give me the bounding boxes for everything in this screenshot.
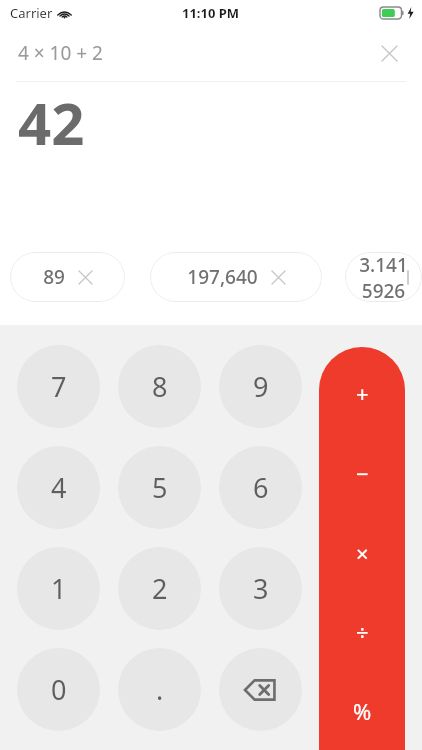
- staticText: 11:10 PM: [182, 4, 240, 22]
- button[interactable]: Backspace: [219, 648, 302, 731]
- button[interactable]: 3: [219, 547, 302, 630]
- staticText: 6: [253, 469, 269, 506]
- button[interactable]: 197,640: [150, 252, 322, 302]
- button[interactable]: .: [118, 648, 201, 731]
- button[interactable]: Operator −: [319, 433, 405, 513]
- button[interactable]: Operator ÷: [319, 592, 405, 671]
- staticText: 7: [51, 368, 67, 405]
- staticText: 9: [253, 368, 269, 405]
- button[interactable]: 5: [118, 446, 201, 529]
- staticText: −: [356, 458, 369, 488]
- button[interactable]: 1: [17, 547, 100, 630]
- button[interactable]: 8: [118, 345, 201, 428]
- staticText: 0: [51, 671, 67, 708]
- staticText: 2: [152, 570, 168, 607]
- button[interactable]: Operator %: [319, 671, 405, 750]
- button[interactable]: 0: [17, 648, 100, 731]
- button[interactable]: 6: [219, 446, 302, 529]
- button[interactable]: Operator ×: [319, 513, 405, 592]
- button[interactable]: 89: [10, 252, 125, 302]
- button[interactable]: 9: [219, 345, 302, 428]
- staticText: .: [156, 671, 164, 708]
- button[interactable]: 3.14159265: [345, 252, 422, 302]
- staticText: 4: [51, 469, 67, 506]
- staticText: 3.14159265: [359, 252, 408, 302]
- staticText: 5: [152, 469, 168, 506]
- staticText: ×: [356, 538, 369, 568]
- staticText: 197,640: [187, 264, 258, 290]
- button[interactable]: 4: [17, 446, 100, 529]
- staticText: %: [353, 696, 372, 726]
- staticText: 3: [253, 570, 269, 607]
- button[interactable]: 7: [17, 345, 100, 428]
- staticText: 8: [152, 368, 168, 405]
- button[interactable]: 2: [118, 547, 201, 630]
- staticText: ÷: [356, 617, 369, 647]
- staticText: 1: [51, 570, 67, 607]
- staticText: +: [356, 378, 369, 408]
- button[interactable]: Operator +: [319, 353, 405, 433]
- staticText: 42: [18, 83, 85, 162]
- button[interactable]: Clear expression: [372, 36, 406, 70]
- staticText: 4 × 10 + 2: [18, 40, 103, 66]
- staticText: 89: [43, 264, 65, 290]
- staticText: Carrier: [10, 4, 53, 22]
